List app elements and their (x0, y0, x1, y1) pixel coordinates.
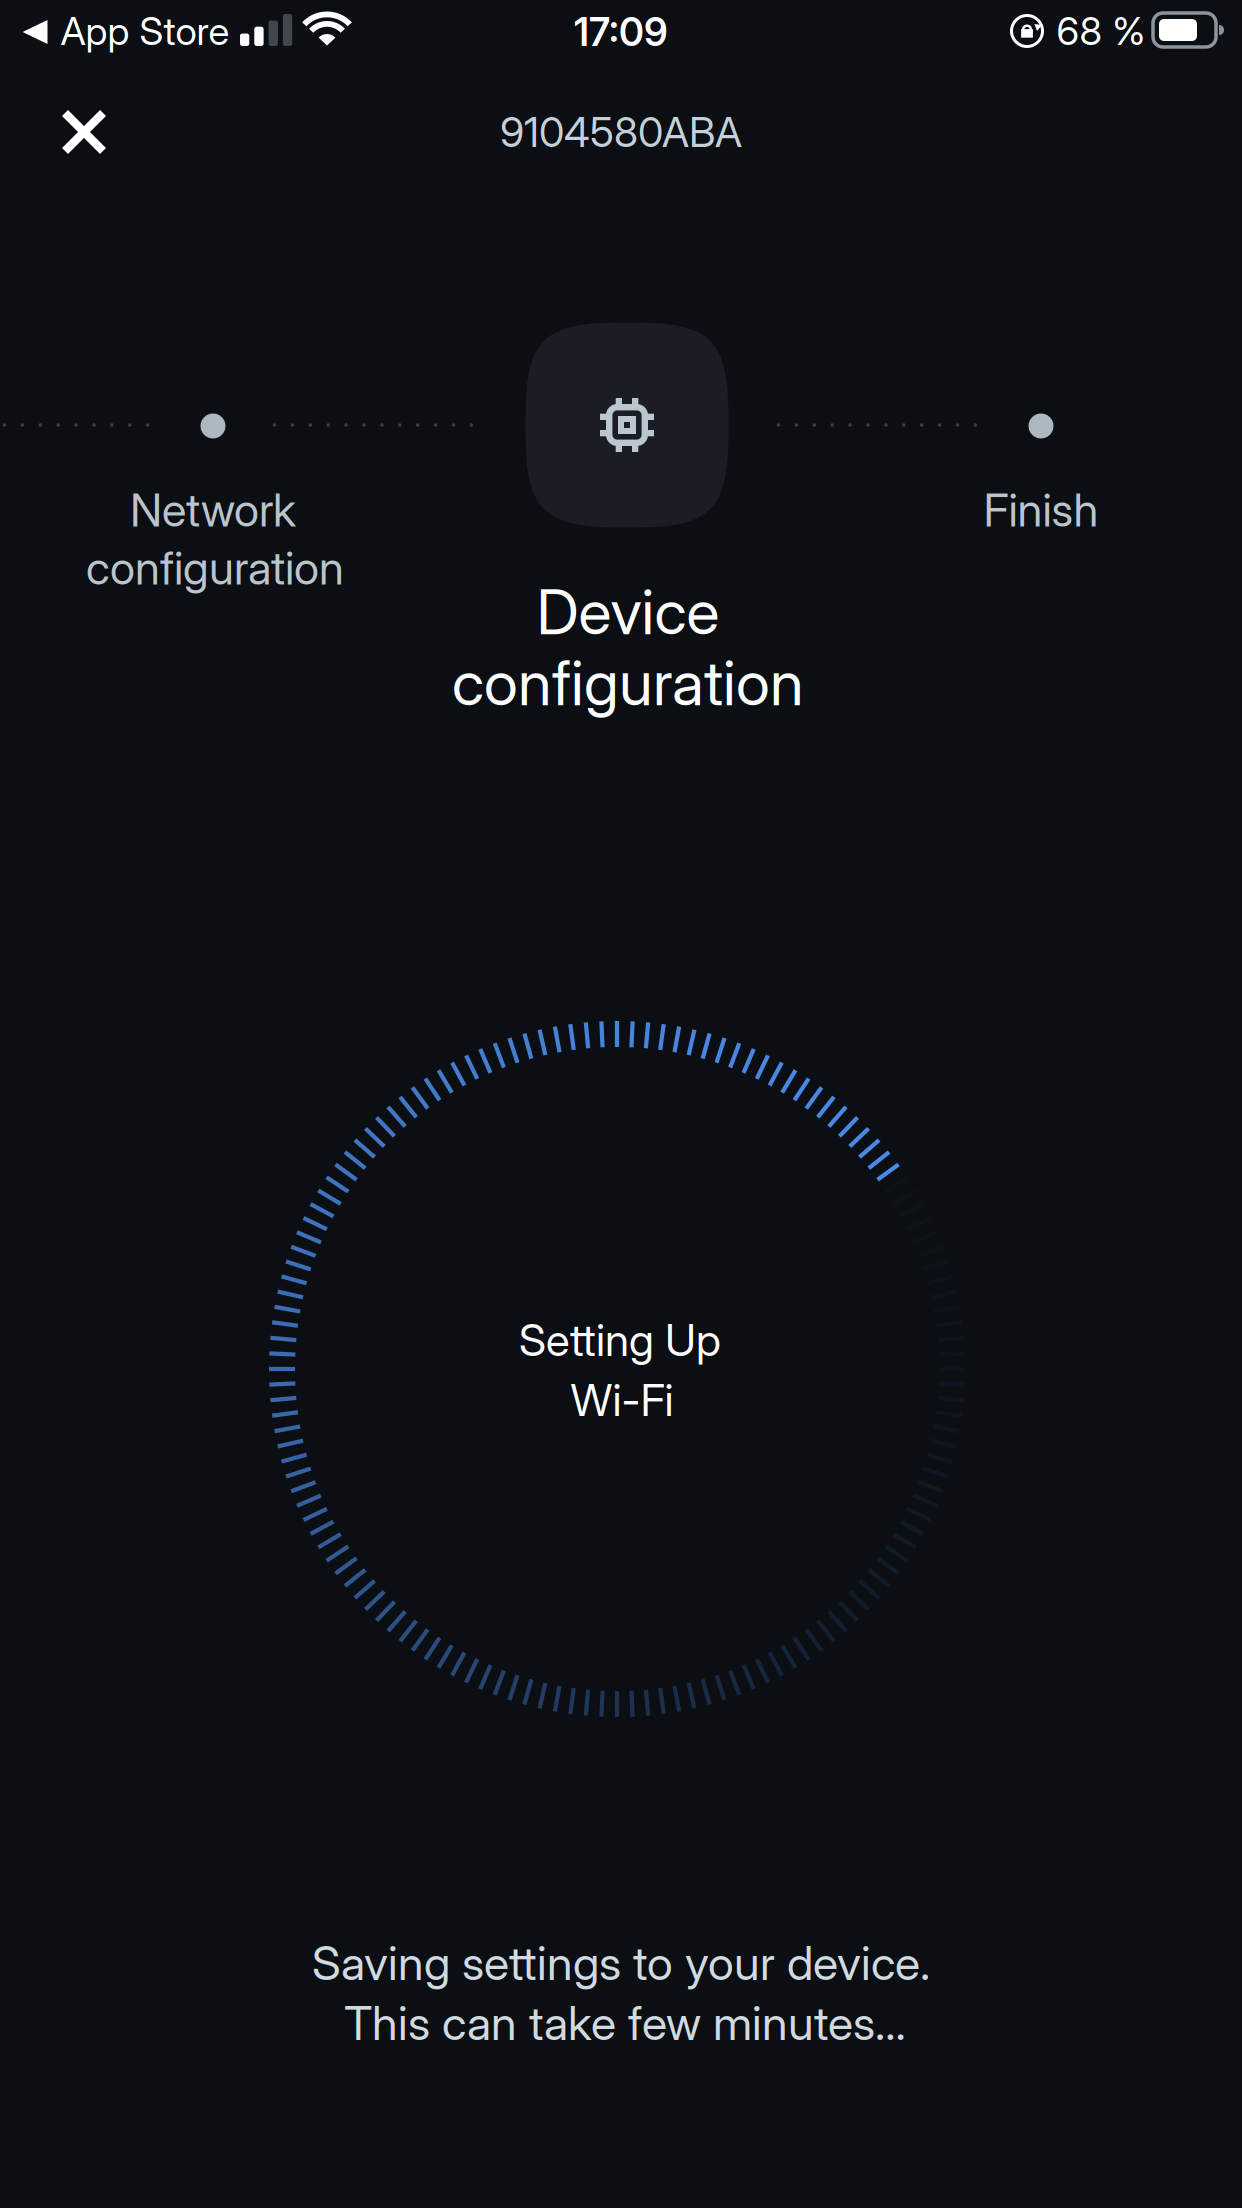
staticText: Wi-Fi (570, 1373, 673, 1427)
staticText: Network (130, 483, 296, 537)
button[interactable]: Close (22, 82, 146, 182)
staticText: configuration (452, 646, 804, 720)
staticText: This can take few minutes… (344, 1995, 906, 2051)
staticText: Setting Up (519, 1313, 721, 1367)
staticText: 17:09 (574, 9, 668, 55)
staticText: 9104580ABA (500, 107, 742, 157)
staticText: configuration (86, 541, 344, 595)
staticText: Device (536, 575, 719, 649)
staticText: Finish (983, 483, 1098, 537)
staticText: App Store (60, 8, 229, 54)
staticText: Saving settings to your device. (312, 1935, 930, 1991)
staticText: 68 % (1056, 8, 1145, 54)
